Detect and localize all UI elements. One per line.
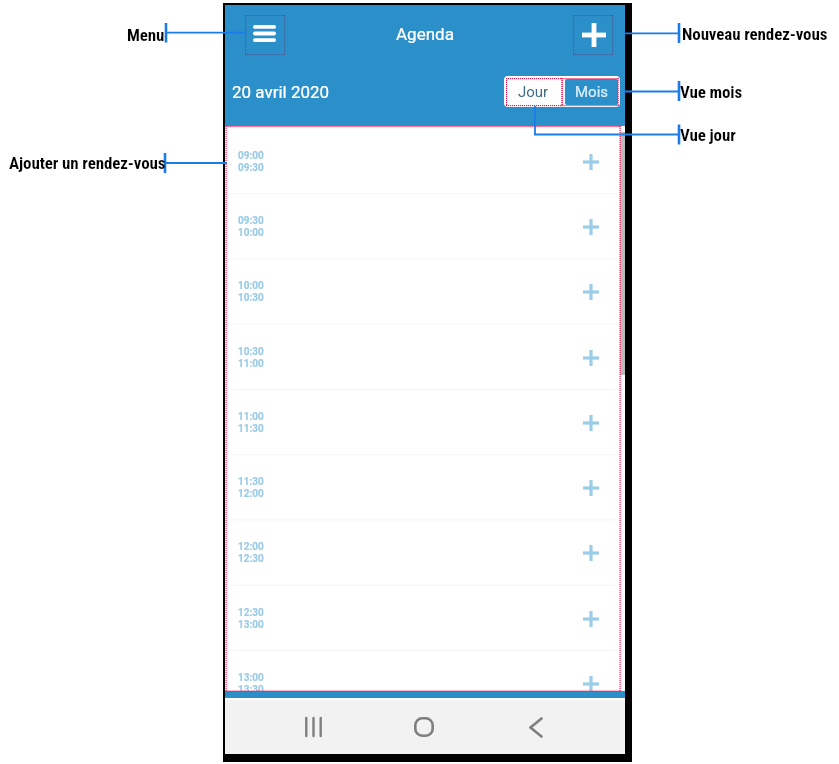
staticText: 13:30 xyxy=(238,684,264,696)
button[interactable]: Recents xyxy=(291,705,335,749)
staticText: 12:00 xyxy=(238,541,264,553)
staticText: 11:30 xyxy=(238,423,264,435)
staticText: 09:00 xyxy=(238,150,264,162)
button[interactable]: Ajouter un rendez-vous xyxy=(576,277,606,307)
button[interactable]: 12:00 xyxy=(225,520,625,585)
staticText: Mois xyxy=(575,83,609,101)
button[interactable]: 11:00 xyxy=(225,390,625,455)
button[interactable]: Menu xyxy=(245,14,284,53)
button[interactable]: Jour xyxy=(504,76,563,107)
button[interactable]: 09:30 xyxy=(225,194,625,259)
button[interactable]: Ajouter un rendez-vous xyxy=(576,343,606,373)
staticText: 09:30 xyxy=(238,162,264,174)
staticText: 12:30 xyxy=(238,553,264,565)
staticText: 10:00 xyxy=(238,280,264,292)
button[interactable]: Ajouter un rendez-vous xyxy=(576,408,606,438)
button[interactable]: Nouveau rendez-vous xyxy=(574,15,613,54)
button[interactable]: Ajouter un rendez-vous xyxy=(576,604,606,634)
button[interactable]: Mois xyxy=(563,76,620,107)
staticText: Jour xyxy=(518,83,549,101)
staticText: 12:30 xyxy=(238,607,264,619)
staticText: 09:30 xyxy=(238,215,264,227)
staticText: 11:00 xyxy=(238,411,264,423)
staticText: 13:00 xyxy=(238,672,264,684)
staticText: 20 avril 2020 xyxy=(232,82,330,102)
button[interactable]: Ajouter un rendez-vous xyxy=(576,473,606,503)
staticText: Menu xyxy=(127,25,165,45)
button[interactable]: 13:00 xyxy=(225,651,625,716)
button[interactable]: Ajouter un rendez-vous xyxy=(576,538,606,568)
button[interactable]: Home xyxy=(402,705,446,749)
staticText: 12:00 xyxy=(238,488,264,500)
staticText: Nouveau rendez-vous xyxy=(682,24,828,44)
staticText: 10:00 xyxy=(238,227,264,239)
button[interactable]: 12:30 xyxy=(225,586,625,651)
button[interactable]: Ajouter un rendez-vous xyxy=(576,147,606,177)
button[interactable]: 10:30 xyxy=(225,325,625,390)
button[interactable]: Ajouter un rendez-vous xyxy=(576,212,606,242)
staticText: Ajouter un rendez-vous xyxy=(9,153,166,173)
staticText: 13:00 xyxy=(238,619,264,631)
button[interactable]: 09:00 xyxy=(225,129,625,194)
button[interactable]: Ajouter un rendez-vous xyxy=(576,669,606,699)
staticText: Agenda xyxy=(396,24,454,44)
button[interactable]: Back xyxy=(514,705,558,749)
button[interactable]: 10:00 xyxy=(225,259,625,324)
staticText: 10:30 xyxy=(238,346,264,358)
staticText: 11:30 xyxy=(238,476,264,488)
staticText: 10:30 xyxy=(238,292,264,304)
staticText: Vue mois xyxy=(680,82,743,102)
staticText: 11:00 xyxy=(238,358,264,370)
staticText: Vue jour xyxy=(680,125,736,145)
button[interactable]: 11:30 xyxy=(225,455,625,520)
